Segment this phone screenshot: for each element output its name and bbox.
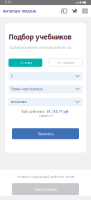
staticText: Не нашли подходящий учебник в списке? [16, 175, 74, 179]
button[interactable]: Заказать [12, 128, 79, 139]
button[interactable]: Catalog [61, 8, 67, 14]
staticText: Подбор учебников [8, 32, 71, 41]
staticText: Русский язык обучения [11, 87, 43, 91]
staticText: английский [11, 100, 27, 104]
staticText: Заказать всё [38, 114, 52, 117]
staticText: Подберите учебники на новый учебный год [8, 46, 71, 49]
button[interactable]: Cart [72, 8, 77, 14]
staticText: Предложить [34, 186, 57, 192]
staticText: 9:41 [5, 1, 12, 4]
button[interactable]: По предмету [49, 59, 83, 67]
button[interactable]: английский [8, 98, 82, 106]
button[interactable]: Русский язык обучения [8, 85, 82, 93]
staticText: Всего учебников: [21, 110, 45, 113]
staticText: 38 | 84.79 руб. [47, 110, 70, 113]
button[interactable]: По классу [8, 59, 42, 67]
button[interactable]: Menu [82, 8, 88, 14]
staticText: AVERSEV MEDIA [3, 8, 36, 14]
staticText: Заказать [37, 131, 53, 136]
staticText: По предмету [57, 61, 74, 64]
staticText: 5 [11, 75, 13, 78]
staticText: По классу [19, 61, 31, 64]
button[interactable]: 5 [8, 72, 82, 80]
button[interactable]: Предложить [12, 183, 79, 195]
